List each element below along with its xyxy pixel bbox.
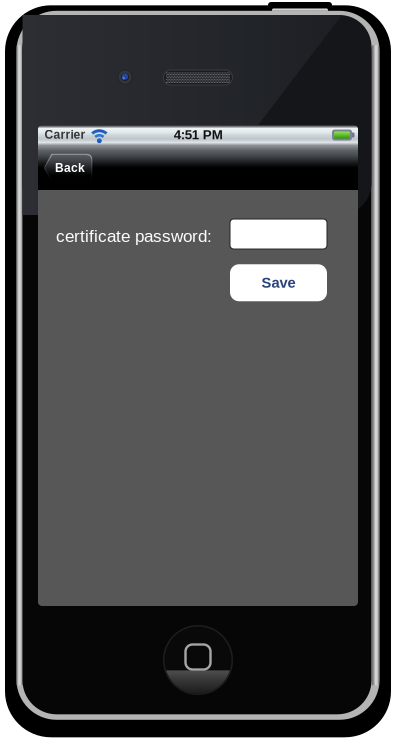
- staticText: 4:51 PM: [174, 127, 223, 142]
- staticText: Save: [261, 275, 295, 291]
- staticText: Back: [55, 161, 85, 174]
- button[interactable]: Back: [43, 154, 92, 182]
- staticText: Carrier: [45, 128, 86, 141]
- button[interactable]: Save: [230, 264, 327, 301]
- staticText: certificate password:: [56, 227, 212, 246]
